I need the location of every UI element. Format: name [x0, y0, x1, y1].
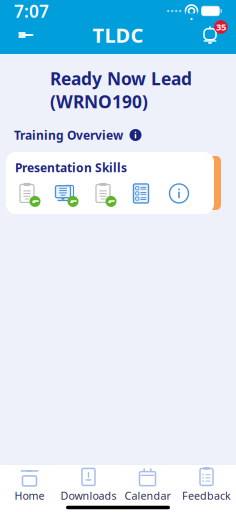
- button[interactable]: Checklist: [122, 180, 160, 206]
- button[interactable]: Feedback: [177, 463, 236, 505]
- staticText: Ready Now Lead (WRNO190): [50, 67, 192, 113]
- button[interactable]: Home: [0, 463, 59, 505]
- staticText: Feedback: [182, 488, 231, 503]
- staticText: TLDC: [92, 22, 143, 48]
- button[interactable]: E-learning, completed: [46, 180, 84, 206]
- staticText: 35: [216, 21, 226, 33]
- button[interactable]: More information: [160, 180, 198, 206]
- staticText: Calendar: [124, 488, 170, 503]
- staticText: Presentation Skills: [15, 159, 127, 175]
- staticText: Downloads: [60, 488, 116, 503]
- staticText: Home: [14, 488, 44, 503]
- staticText: Training Overview: [14, 127, 123, 143]
- button[interactable]: Back: [9, 21, 43, 49]
- button[interactable]: Training overview information: [129, 128, 142, 141]
- button[interactable]: Calendar: [118, 463, 177, 505]
- staticText: 7:07: [14, 0, 49, 22]
- button[interactable]: Notifications, 35 unread: [193, 21, 227, 49]
- button[interactable]: Downloads: [59, 463, 118, 505]
- button[interactable]: Assessment, completed: [84, 180, 122, 206]
- button[interactable]: Course outline, completed: [8, 180, 46, 206]
